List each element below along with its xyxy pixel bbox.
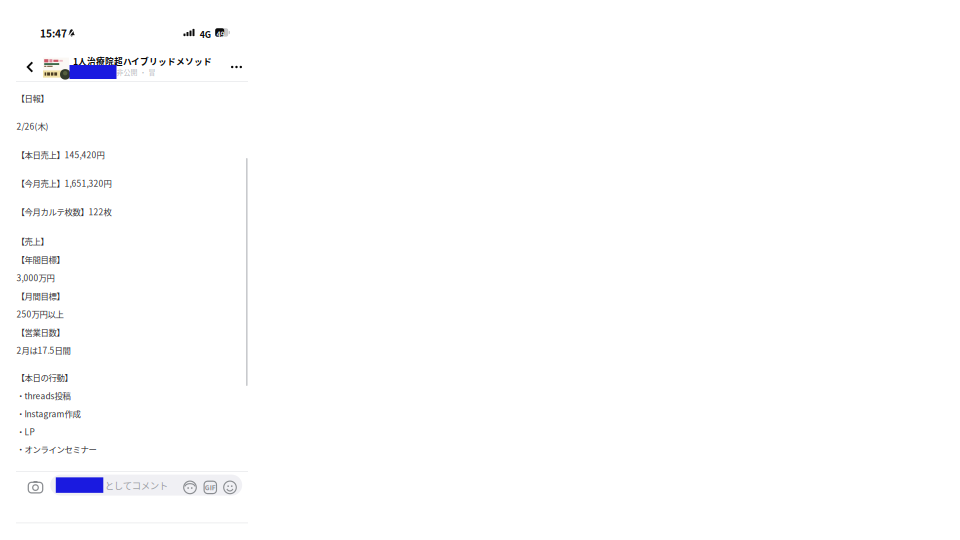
staticText: 250万円以上 xyxy=(16,308,63,320)
staticText: 【日報】 xyxy=(16,92,48,104)
staticText: 【本日の行動】 xyxy=(16,371,72,383)
button[interactable]: Back xyxy=(25,60,34,73)
staticText: 2月は17.5日間 xyxy=(16,344,70,356)
button[interactable]: Camera xyxy=(28,482,43,494)
staticText: 【営業日数】 xyxy=(16,326,64,338)
button[interactable]: Emoji xyxy=(224,481,236,494)
staticText: 【本日売上】145,420円 xyxy=(16,148,104,161)
staticText: としてコメント xyxy=(105,478,168,492)
staticText: ・threads投稿 xyxy=(16,389,70,402)
staticText: 【年間目標】 xyxy=(16,253,64,265)
button[interactable]: 1人治療院超ハイブリッドメソッド xyxy=(73,56,248,66)
staticText: GIF xyxy=(205,483,216,492)
staticText: ・Instagram作成 xyxy=(16,407,80,420)
staticText: 2/26(木) xyxy=(16,120,48,132)
button[interactable]: GIF xyxy=(204,481,217,494)
staticText: 4G xyxy=(200,28,211,41)
staticText: ・オンラインセミナー xyxy=(16,443,96,455)
staticText: 【今月売上】1,651,320円 xyxy=(16,177,111,189)
staticText: 【売上】 xyxy=(16,235,48,247)
button[interactable]: More options xyxy=(230,64,242,70)
staticText: 【今月カルテ枚数】122枚 xyxy=(16,205,111,218)
staticText: 3,000万円 xyxy=(16,271,54,284)
button[interactable]: Stickers xyxy=(184,481,196,494)
staticText: 15:47 xyxy=(40,26,67,40)
staticText: 49 xyxy=(216,29,224,40)
staticText: 1人治療院超ハイブリッドメソッド xyxy=(73,55,212,67)
staticText: 非公開 ・ 冒 xyxy=(116,67,155,77)
staticText: ・LP xyxy=(16,426,34,438)
button[interactable]: としてコメント xyxy=(50,475,242,496)
staticText: 【月間目標】 xyxy=(16,290,64,302)
